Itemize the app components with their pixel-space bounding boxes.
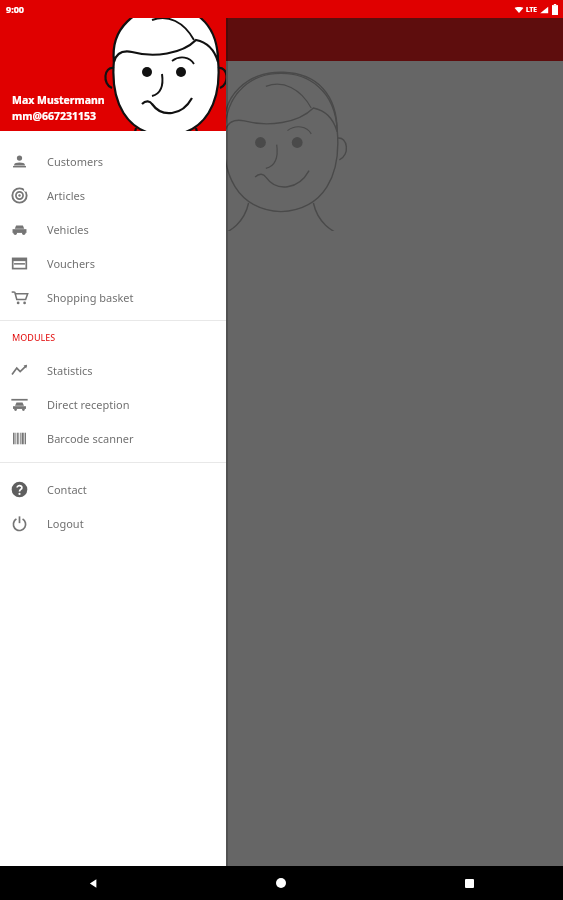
staticText: LTE [526,5,537,14]
staticText: Shopping basket [47,290,134,305]
staticText: MODULES [12,331,56,343]
button[interactable]: Direct reception [0,387,226,421]
staticText: Articles [47,188,85,203]
button[interactable]: Back [0,866,187,900]
staticText: Max Mustermann [12,93,105,107]
button[interactable]: Contact [0,472,226,506]
staticText: 9:00 [6,3,24,15]
staticText: mm@667231153 [12,109,96,123]
staticText: Vouchers [47,256,95,271]
staticText: Vehicles [47,222,89,237]
button[interactable]: Customers [0,144,226,178]
button[interactable]: Shopping basket [0,280,226,314]
staticText: Direct reception [47,397,130,412]
button[interactable]: Barcode scanner [0,421,226,455]
staticText: Barcode scanner [47,431,134,446]
staticText: Contact [47,482,87,497]
button[interactable]: Vouchers [0,246,226,280]
staticText: Customers [47,154,103,169]
button[interactable]: Recent apps [375,866,563,900]
staticText: Logout [47,516,84,531]
button[interactable]: Home [187,866,375,900]
button[interactable]: Vehicles [0,212,226,246]
staticText: Statistics [47,363,93,378]
button[interactable]: Logout [0,506,226,540]
button[interactable]: Statistics [0,353,226,387]
button[interactable]: Articles [0,178,226,212]
